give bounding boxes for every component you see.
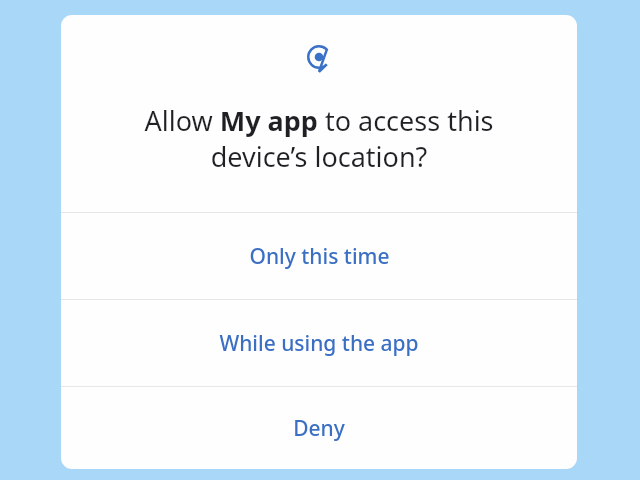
other: Location bbox=[307, 45, 331, 73]
button[interactable]: Deny bbox=[61, 387, 577, 469]
button[interactable]: Only this time bbox=[61, 213, 577, 299]
staticText: Only this time bbox=[249, 242, 390, 271]
button[interactable]: While using the app bbox=[61, 300, 577, 386]
staticText: While using the app bbox=[219, 329, 419, 358]
staticText: Allow My app to access this device’s loc… bbox=[103, 102, 535, 175]
staticText: Deny bbox=[293, 414, 345, 443]
